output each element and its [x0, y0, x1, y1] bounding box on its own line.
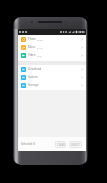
button[interactable]: System [18, 73, 86, 81]
staticText: CLEAR [57, 143, 65, 147]
staticText: Video [28, 53, 36, 57]
staticText: (121) [37, 46, 43, 49]
staticText: SELECT [71, 143, 80, 147]
button[interactable]: Photo [18, 35, 86, 43]
staticText: (15) [37, 54, 42, 57]
button[interactable]: Storage [18, 81, 86, 89]
staticText: Music [28, 45, 36, 49]
staticText: System [28, 75, 38, 79]
staticText: (230) [37, 38, 43, 41]
staticText: Selected: 0 [21, 142, 36, 146]
staticText: Storage [28, 83, 39, 87]
button[interactable]: Download [18, 65, 86, 73]
staticText: Photo [28, 37, 36, 41]
button[interactable]: Video [18, 51, 86, 59]
staticText: Download [28, 67, 42, 71]
button[interactable]: CLEAR [55, 141, 66, 148]
button[interactable]: SELECT [69, 141, 82, 148]
button[interactable]: Music [18, 43, 86, 51]
